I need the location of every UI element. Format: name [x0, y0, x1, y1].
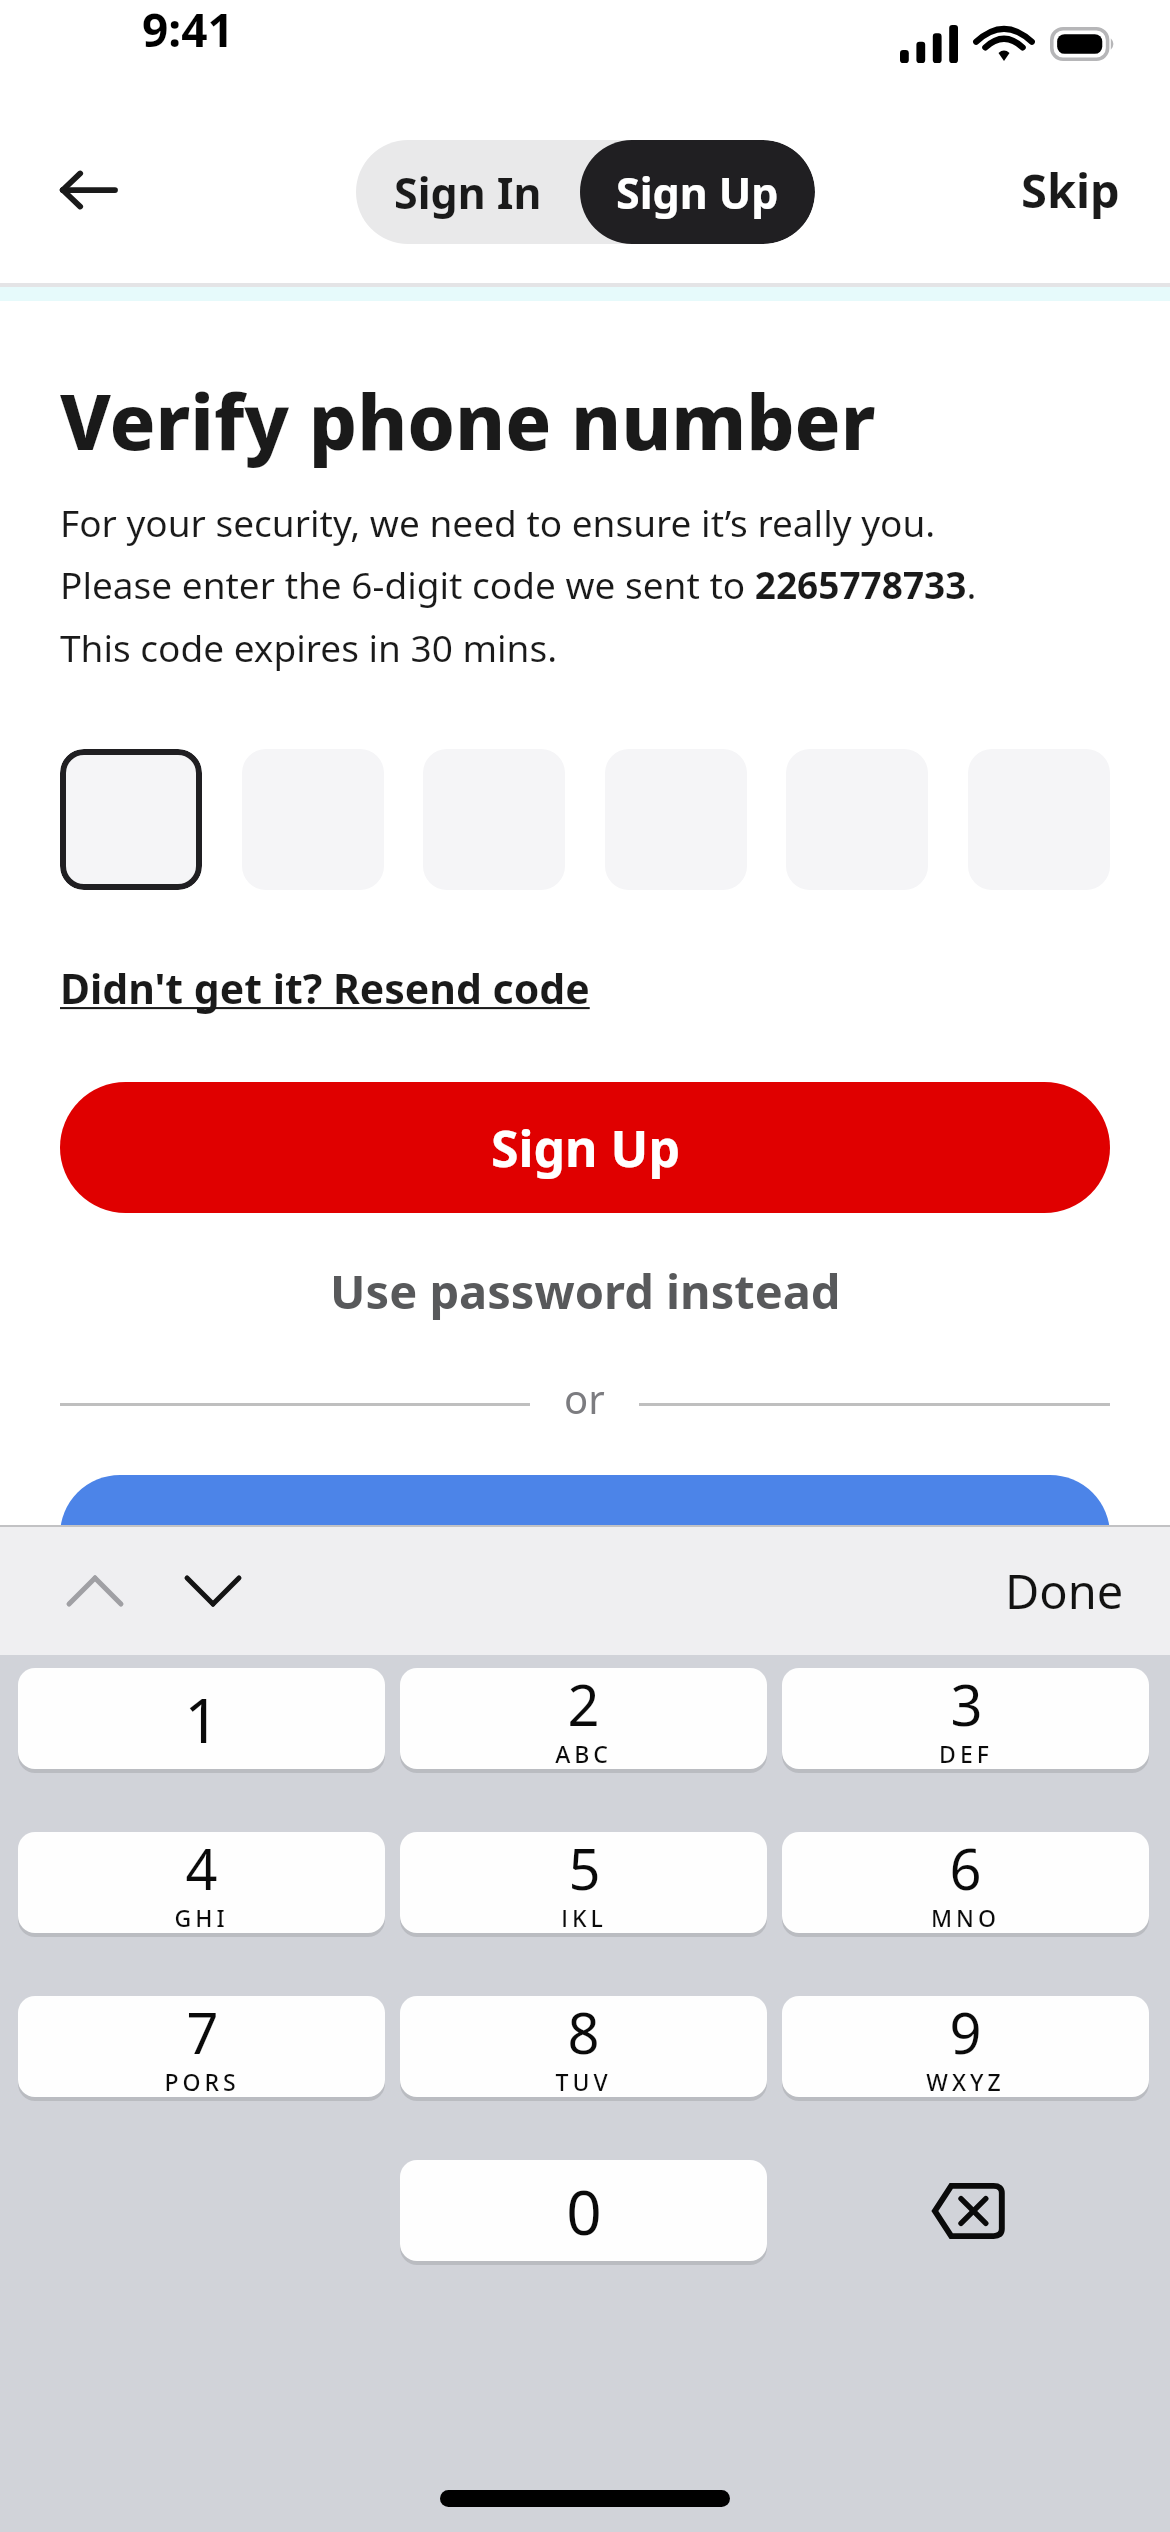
button[interactable]: Code digit 1	[60, 749, 202, 890]
staticText: 8	[567, 1996, 600, 2070]
button[interactable]: Use password instead	[60, 1241, 1110, 1341]
staticText: PQRS	[164, 2066, 240, 2091]
staticText: Sign Up	[616, 163, 779, 222]
button[interactable]: Next field	[160, 1541, 266, 1641]
staticText: 4	[185, 1832, 218, 1906]
staticText: 1	[184, 1677, 220, 1761]
staticText: 3	[950, 1668, 983, 1742]
button[interactable]: Sign Up	[580, 140, 815, 244]
staticText: 0	[566, 2169, 602, 2253]
button[interactable]: 1	[18, 1668, 385, 1769]
staticText: 9:41	[142, 0, 234, 61]
button[interactable]: 4	[18, 1832, 385, 1933]
staticText: 9	[949, 1996, 982, 2070]
button[interactable]: 0	[400, 2160, 767, 2261]
staticText: GHI	[174, 1902, 229, 1927]
staticText: WXYZ	[926, 2066, 1005, 2091]
staticText: For your security, we need to ensure it’…	[60, 497, 977, 673]
staticText: Done	[1005, 1559, 1124, 1623]
staticText: Sign Up	[491, 1114, 680, 1182]
staticText: 2	[567, 1668, 600, 1742]
staticText: 7	[186, 1996, 219, 2070]
staticText: Skip	[1021, 158, 1120, 222]
button[interactable]: Previous field	[42, 1541, 148, 1641]
button[interactable]: Delete	[782, 2160, 1149, 2261]
staticText: Didn't get it? Resend code	[60, 960, 590, 1016]
button[interactable]: Didn't get it? Resend code	[60, 954, 590, 1022]
button[interactable]: Back	[40, 144, 132, 236]
button[interactable]: 2	[400, 1668, 767, 1769]
staticText: Sign In	[394, 163, 542, 222]
button[interactable]: 5	[400, 1832, 767, 1933]
staticText: or	[564, 1371, 605, 1425]
staticText: MNO	[931, 1902, 1000, 1927]
staticText: 6	[949, 1832, 982, 1906]
staticText: DEF	[939, 1738, 993, 1763]
button[interactable]: 8	[400, 1996, 767, 2097]
staticText: JKL	[561, 1902, 607, 1927]
button[interactable]: 3	[782, 1668, 1149, 1769]
button[interactable]	[60, 1475, 1110, 1595]
button[interactable]: Sign In	[356, 140, 580, 244]
button[interactable]: Sign Up	[60, 1082, 1110, 1213]
button[interactable]: 9	[782, 1996, 1149, 2097]
staticText: Use password instead	[330, 1259, 841, 1323]
staticText: Verify phone number	[60, 369, 876, 473]
button[interactable]: Skip	[1005, 140, 1136, 240]
button[interactable]: Done	[989, 1545, 1140, 1637]
button[interactable]: 6	[782, 1832, 1149, 1933]
staticText: TUV	[555, 2066, 612, 2091]
staticText: ABC	[555, 1738, 612, 1763]
button[interactable]: 7	[18, 1996, 385, 2097]
staticText: 5	[568, 1832, 601, 1906]
